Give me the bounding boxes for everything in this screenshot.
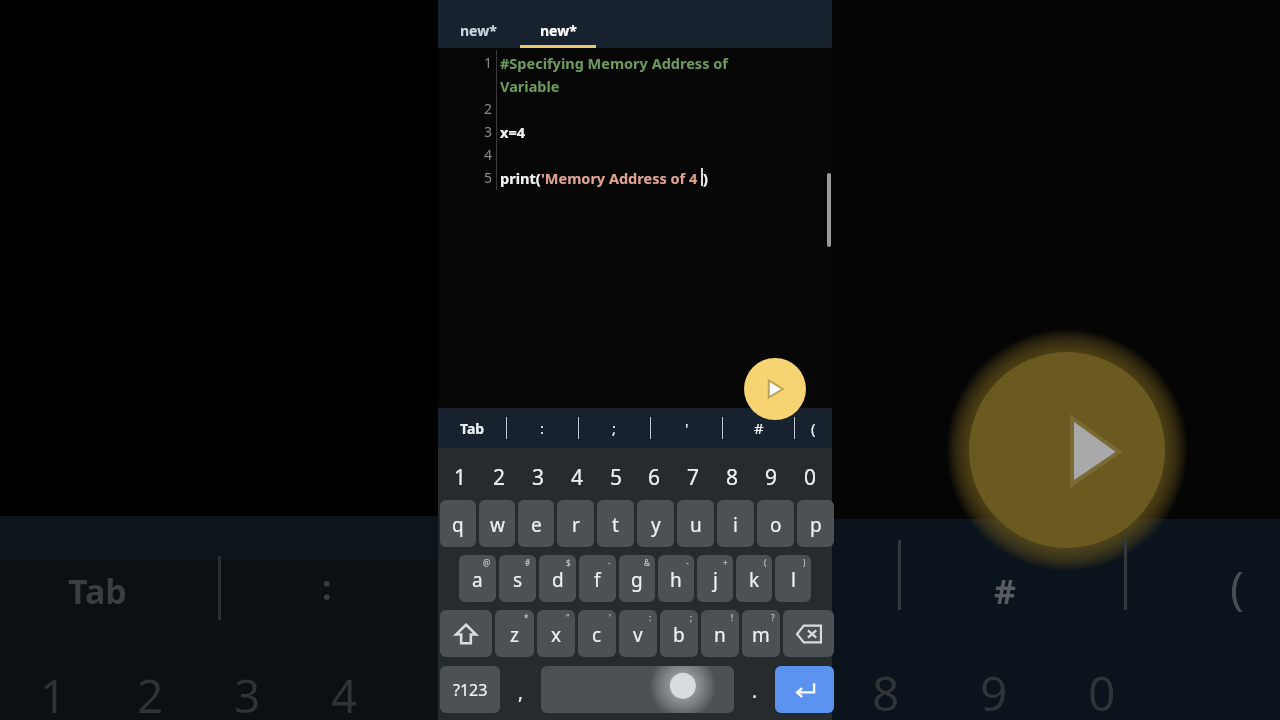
button[interactable]: h <box>658 555 694 602</box>
button[interactable]: , <box>503 666 538 713</box>
button[interactable]: 2 <box>482 457 516 497</box>
staticText: : <box>322 564 332 610</box>
staticText: d <box>552 567 564 593</box>
staticText: 9 <box>980 660 1008 720</box>
staticText: 3 <box>532 463 545 492</box>
button[interactable]: ; <box>579 408 650 448</box>
button[interactable]: 4 <box>560 457 594 497</box>
button[interactable]: n <box>701 610 739 657</box>
staticText: print( <box>500 168 541 188</box>
button[interactable]: ?123 <box>440 666 500 713</box>
button[interactable]: m <box>742 610 780 657</box>
staticText: c <box>592 622 602 648</box>
staticText: x <box>551 622 562 648</box>
staticText: y <box>651 512 661 538</box>
staticText: t <box>612 512 619 538</box>
button[interactable]: q <box>440 500 476 547</box>
button[interactable]: 3 <box>521 457 555 497</box>
button[interactable]: f <box>579 555 616 602</box>
staticText: #Specifying Memory Address of <box>500 53 728 73</box>
button[interactable]: ( <box>795 408 832 448</box>
staticText: g <box>631 567 643 593</box>
button[interactable]: y <box>637 500 674 547</box>
staticText: i <box>733 512 738 538</box>
staticText: Tab <box>460 419 485 438</box>
button[interactable]: p <box>797 500 834 547</box>
button[interactable]: u <box>677 500 714 547</box>
staticText: $ <box>566 557 571 568</box>
staticText: ; <box>612 418 617 438</box>
staticText: - <box>608 557 611 568</box>
button[interactable]: # <box>723 408 794 448</box>
button[interactable]: b <box>660 610 698 657</box>
button[interactable]: new* <box>438 0 518 48</box>
button[interactable]: 6 <box>637 457 671 497</box>
staticText: p <box>810 512 822 538</box>
button[interactable]: j <box>697 555 733 602</box>
staticText: r <box>572 512 580 538</box>
staticText: 'Memory Address of 4 <box>541 168 701 188</box>
staticText: 6 <box>648 463 661 492</box>
staticText: 4 <box>472 145 492 164</box>
staticText: Variable <box>500 76 560 96</box>
staticText: , <box>518 679 524 705</box>
button[interactable]: z <box>495 610 534 657</box>
button[interactable]: 5 <box>599 457 633 497</box>
staticText: 1 <box>454 463 467 492</box>
button[interactable]: 0 <box>793 457 827 497</box>
staticText: 4 <box>571 463 584 492</box>
staticText: 2 <box>493 463 506 492</box>
staticText: 3 <box>472 122 492 141</box>
staticText: 0 <box>1088 660 1116 720</box>
staticText: . <box>752 678 758 704</box>
button[interactable]: Key <box>440 610 492 657</box>
staticText: 8 <box>726 463 739 492</box>
button[interactable]: w <box>479 500 515 547</box>
staticText: ( <box>764 557 767 568</box>
button[interactable]: v <box>619 610 657 657</box>
staticText: m <box>752 622 770 648</box>
button[interactable]: 7 <box>676 457 710 497</box>
button[interactable]: . <box>737 666 772 713</box>
button[interactable]: l <box>775 555 811 602</box>
button[interactable]: i <box>717 500 754 547</box>
button[interactable]: 1 <box>443 457 477 497</box>
staticText: w <box>490 512 505 538</box>
staticText: - <box>686 557 689 568</box>
staticText: ! <box>731 612 734 623</box>
staticText: e <box>531 512 542 538</box>
staticText: ?123 <box>453 679 488 701</box>
button[interactable]: o <box>757 500 794 547</box>
button[interactable]: e <box>518 500 554 547</box>
staticText: q <box>452 512 464 538</box>
button[interactable]: k <box>736 555 772 602</box>
button[interactable]: d <box>539 555 576 602</box>
staticText: Tab <box>68 568 127 614</box>
button[interactable]: Enter <box>775 666 834 713</box>
button[interactable]: Space <box>541 666 734 713</box>
staticText: # <box>994 568 1016 614</box>
button[interactable]: Key <box>783 610 834 657</box>
staticText: new* <box>460 21 497 40</box>
button[interactable]: c <box>578 610 616 657</box>
button[interactable]: Run <box>744 358 806 420</box>
staticText: l <box>791 567 796 593</box>
button[interactable]: 9 <box>754 457 788 497</box>
button[interactable]: s <box>499 555 536 602</box>
button[interactable]: ' <box>651 408 722 448</box>
button[interactable]: new* <box>518 0 598 48</box>
button[interactable]: Tab <box>438 408 506 448</box>
button[interactable]: g <box>619 555 655 602</box>
staticText: x=4 <box>500 122 525 142</box>
button[interactable]: a <box>459 555 496 602</box>
staticText: ? <box>771 612 775 623</box>
staticText: z <box>510 622 519 648</box>
button[interactable]: r <box>557 500 594 547</box>
staticText: 0 <box>804 463 817 492</box>
staticText: 9 <box>765 463 778 492</box>
button[interactable]: x <box>537 610 575 657</box>
staticText: a <box>472 567 483 593</box>
button[interactable]: t <box>597 500 634 547</box>
button[interactable]: 8 <box>715 457 749 497</box>
button[interactable]: : <box>507 408 578 448</box>
